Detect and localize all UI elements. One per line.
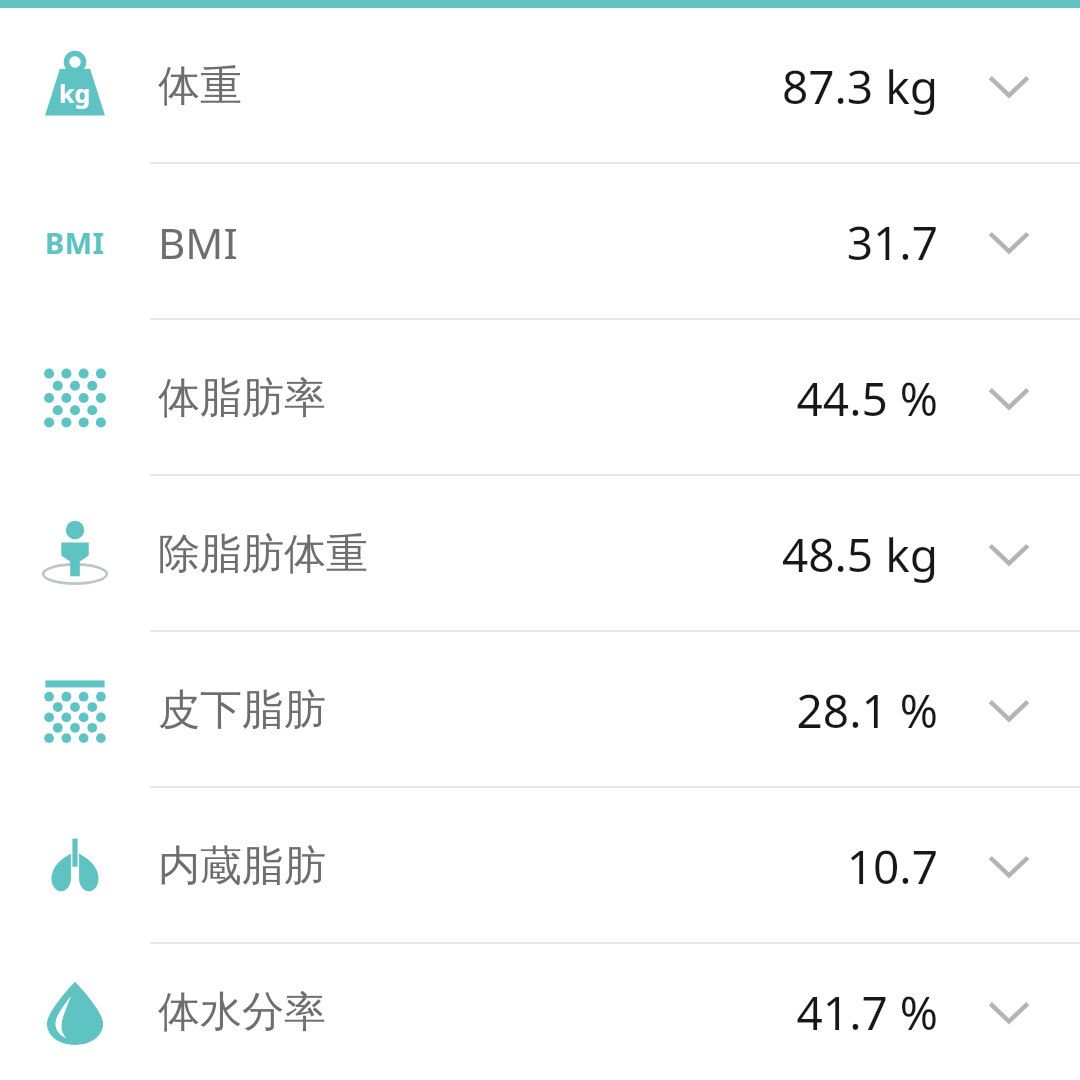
button[interactable]: BMI [0,164,1080,320]
button[interactable]: Expand 体脂肪率 [938,320,1080,476]
staticText: 体脂肪率 [158,372,326,425]
button[interactable]: Expand 内蔵脂肪 [938,788,1080,944]
staticText: 44.5 % [796,367,938,430]
staticText: 28.1 % [796,679,938,742]
button[interactable]: Expand 除脂肪体重 [938,476,1080,632]
staticText: 87.3 kg [781,55,938,118]
staticText: 除脂肪体重 [158,528,368,581]
button[interactable]: 内蔵脂肪 [0,788,1080,944]
staticText: 内蔵脂肪 [158,840,326,893]
staticText: 41.7 % [796,981,938,1044]
staticText: 31.7 [846,211,938,274]
staticText: BMI [45,223,105,262]
staticText: 体重 [158,60,242,113]
staticText: BMI [158,214,238,271]
button[interactable]: 皮下脂肪 [0,632,1080,788]
button[interactable]: Expand 皮下脂肪 [938,632,1080,788]
staticText: kg [59,76,91,110]
button[interactable]: Expand 体水分率 [938,944,1080,1080]
button[interactable]: Expand 体重 [938,8,1080,164]
button[interactable]: 体脂肪率 [0,320,1080,476]
button[interactable]: 体水分率 [0,944,1080,1080]
staticText: 体水分率 [158,986,326,1039]
staticText: 10.7 [846,835,938,898]
button[interactable]: 除脂肪体重 [0,476,1080,632]
staticText: 皮下脂肪 [158,684,326,737]
staticText: 48.5 kg [781,523,938,586]
button[interactable]: Expand BMI [938,164,1080,320]
button[interactable]: kg [0,8,1080,164]
